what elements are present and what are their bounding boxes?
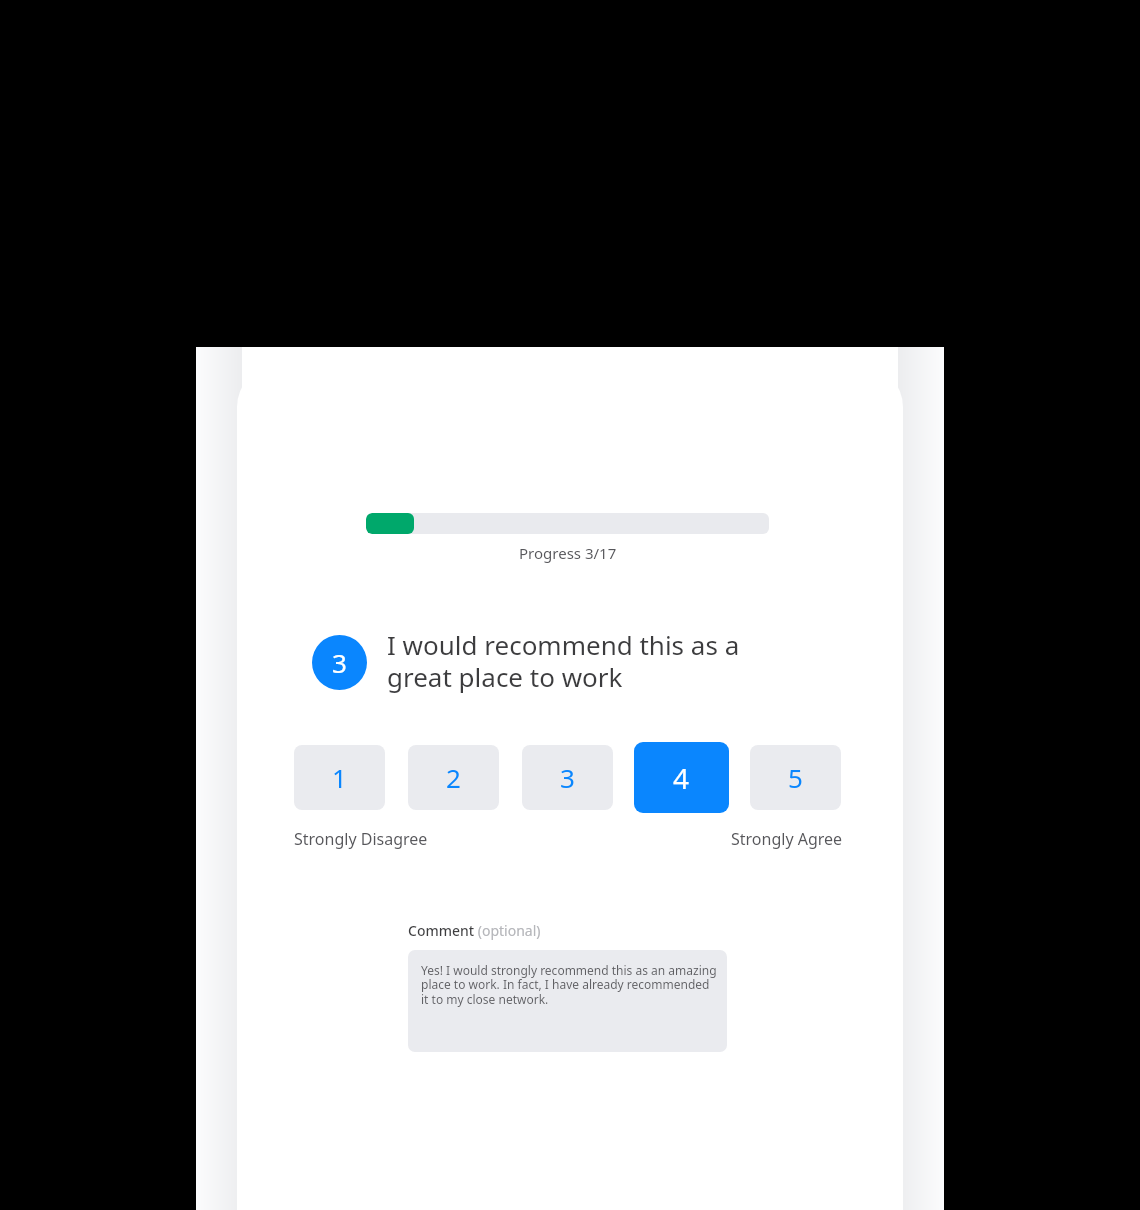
button[interactable]: Yes! I would strongly recommend this as … (408, 950, 727, 1052)
staticText: 1 (332, 760, 347, 795)
staticText: Comment (optional) (408, 921, 541, 940)
staticText: 5 (788, 760, 803, 795)
staticText: I would recommend this as a great place … (387, 627, 787, 695)
button[interactable]: 3 (522, 745, 613, 810)
button[interactable]: 4 (634, 742, 729, 813)
staticText: 4 (673, 759, 690, 797)
staticText: 3 (332, 645, 347, 680)
staticText: 2 (446, 760, 461, 795)
staticText: Strongly Disagree (294, 828, 428, 850)
staticText: 3 (560, 760, 575, 795)
button[interactable]: 5 (750, 745, 841, 810)
button[interactable]: 2 (408, 745, 499, 810)
staticText: Progress 3/17 (519, 543, 617, 563)
staticText: Yes! I would strongly recommend this as … (421, 962, 717, 1008)
staticText: Strongly Agree (731, 828, 843, 850)
button[interactable]: 1 (294, 745, 385, 810)
